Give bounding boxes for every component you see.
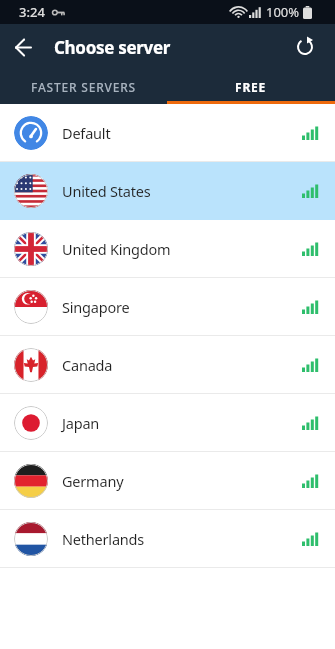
- staticText: Choose server: [54, 36, 171, 59]
- staticText: FASTER SERVERS: [31, 79, 137, 95]
- button[interactable]: United States: [0, 162, 335, 220]
- button[interactable]: Germany: [0, 452, 335, 510]
- button[interactable]: Japan: [0, 394, 335, 452]
- staticText: Netherlands: [62, 529, 145, 549]
- button[interactable]: [282, 24, 328, 70]
- button[interactable]: Singapore: [0, 278, 335, 336]
- staticText: 3:24: [19, 3, 45, 21]
- staticText: FREE: [235, 79, 267, 95]
- staticText: United Kingdom: [62, 239, 171, 259]
- staticText: 100%: [266, 3, 300, 21]
- staticText: Canada: [62, 355, 113, 375]
- button[interactable]: Canada: [0, 336, 335, 394]
- staticText: Germany: [62, 471, 124, 491]
- staticText: Singapore: [62, 297, 130, 317]
- button[interactable]: FREE: [167, 70, 335, 104]
- button[interactable]: United Kingdom: [0, 220, 335, 278]
- button[interactable]: Netherlands: [0, 510, 335, 568]
- button[interactable]: FASTER SERVERS: [0, 70, 167, 104]
- staticText: United States: [62, 181, 151, 201]
- button[interactable]: Default: [0, 104, 335, 162]
- staticText: Japan: [62, 413, 100, 433]
- staticText: Default: [62, 123, 111, 143]
- button[interactable]: [0, 24, 46, 70]
